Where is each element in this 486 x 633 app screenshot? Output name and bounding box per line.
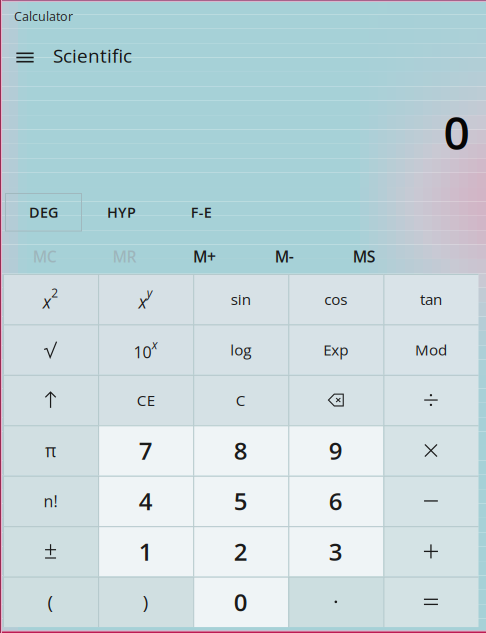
staticText: n! [43,490,57,512]
staticText: x [152,336,158,353]
button[interactable]: M+ [164,241,244,271]
staticText: MC [33,246,57,267]
staticText: 6 [329,485,343,517]
staticText: 9 [329,434,343,467]
button[interactable]: 9 [288,425,383,476]
button[interactable]: MR [85,241,164,271]
staticText: M- [275,246,294,267]
staticText: DEG [29,202,58,222]
button[interactable]: sin [193,274,288,324]
staticText: 0 [443,101,469,163]
button[interactable]: F-E [161,193,241,231]
button[interactable]: log [193,324,288,375]
staticText: Exp [323,339,348,360]
staticText: 7 [139,434,153,467]
staticText: MR [113,246,137,267]
button[interactable]: 7 [98,425,193,476]
staticText: CE [137,390,155,410]
button[interactable]: x [3,274,98,324]
button[interactable] [3,526,98,577]
staticText: cos [324,289,347,309]
staticText: Mod [415,339,447,360]
staticText: 1 [139,535,153,568]
button[interactable]: Open navigation menu [6,38,44,77]
button[interactable] [3,375,98,425]
button[interactable]: DEG [5,193,81,231]
button[interactable] [288,375,383,425]
button[interactable] [288,577,383,627]
staticText: C [236,390,246,410]
button[interactable]: Scientific [53,42,132,68]
staticText: Calculator [14,7,73,25]
button[interactable]: MS [324,241,404,271]
staticText: ( [47,589,53,614]
staticText: tan [420,289,442,309]
button[interactable] [383,375,478,425]
staticText: 10 [133,341,151,363]
button[interactable]: M- [244,241,324,271]
button[interactable]: 4 [98,476,193,526]
staticText: log [230,339,251,360]
button[interactable] [383,526,478,577]
button[interactable]: 3 [288,526,383,577]
staticText: ) [143,589,149,614]
button[interactable]: x [98,274,193,324]
staticText: F-E [191,202,212,222]
staticText: MS [353,246,376,267]
button[interactable]: 8 [193,425,288,476]
staticText: x [43,290,51,313]
button[interactable]: 6 [288,476,383,526]
button[interactable] [383,476,478,526]
button[interactable]: π [3,425,98,476]
staticText: 0 [234,585,248,618]
staticText: 8 [234,434,248,467]
button[interactable]: ) [98,577,193,627]
staticText: π [45,439,56,462]
staticText: x [138,290,146,313]
staticText: 4 [139,485,153,517]
button[interactable]: MC [5,241,85,271]
staticText: 3 [329,535,343,568]
staticText: 2 [234,535,248,568]
button[interactable] [383,425,478,476]
button[interactable]: n! [3,476,98,526]
button[interactable]: 2 [193,526,288,577]
button[interactable]: Exp [288,324,383,375]
button[interactable]: ( [3,577,98,627]
staticText: 2 [51,285,58,301]
button[interactable]: 5 [193,476,288,526]
button[interactable] [383,577,478,627]
button[interactable]: Mod [383,324,478,375]
button[interactable]: 1 [98,526,193,577]
button[interactable]: tan [383,274,478,324]
button[interactable]: CE [98,375,193,425]
button[interactable] [3,324,98,375]
staticText: 5 [234,485,248,517]
staticText: y [147,285,153,301]
button[interactable]: cos [288,274,383,324]
staticText: sin [231,289,251,309]
button[interactable]: C [193,375,288,425]
staticText: M+ [193,246,216,267]
staticText: Scientific [53,42,132,68]
staticText: HYP [107,202,136,222]
button[interactable]: 0 [193,577,288,627]
button[interactable]: HYP [81,193,161,231]
button[interactable]: 10 [98,324,193,375]
